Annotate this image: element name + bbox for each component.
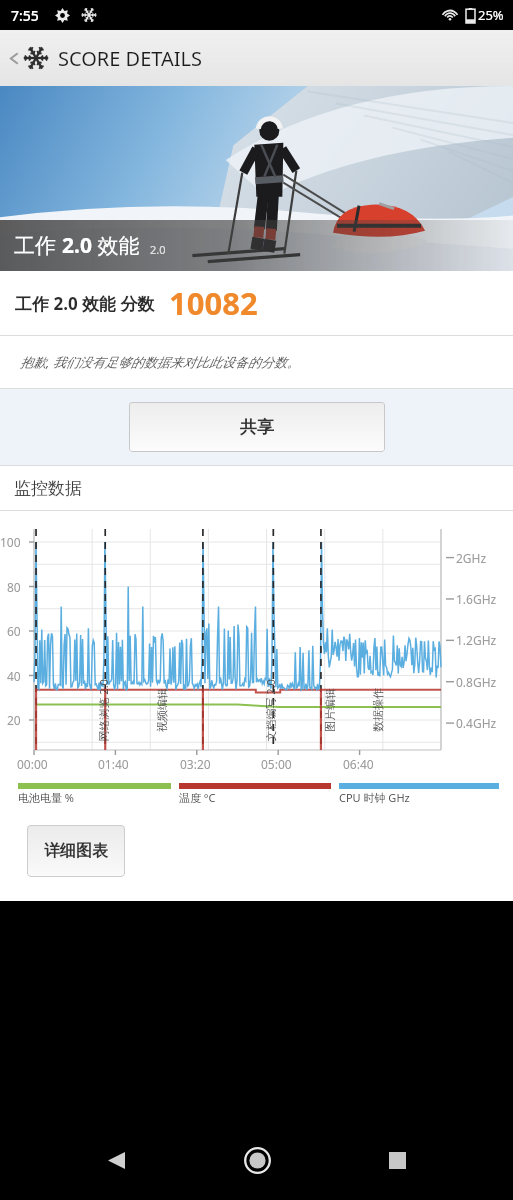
staticText: 00:00 [17,756,48,772]
button[interactable]: Recent apps [373,1136,421,1184]
staticText: 0.8GHz [456,674,497,690]
staticText: 0.4GHz [456,715,497,731]
button[interactable]: Home [233,1136,281,1184]
button[interactable]: Back [0,37,55,79]
staticText: CPU 时钟 GHz [339,790,410,805]
staticText: 80 [7,579,21,595]
staticText: 03:20 [180,756,211,772]
staticText: 电池电量 % [18,790,75,805]
staticText: 温度 °C [179,790,216,805]
staticText: 2.0 [150,242,166,257]
staticText: 1.2GHz [456,632,497,648]
staticText: 效能 [92,231,140,260]
staticText: 1.6GHz [456,591,497,607]
staticText: 2.0 [62,231,92,260]
staticText: 工作 2.0 效能 分数 [15,292,155,315]
staticText: 工作 [14,231,62,260]
staticText: 06:40 [343,756,374,772]
staticText: 共享 [240,417,274,438]
staticText: 网络浏览 2.0 [95,678,109,741]
staticText: 60 [7,623,21,639]
staticText: 40 [7,668,21,684]
staticText: 文档编写 2.0 [262,678,276,741]
staticText: 视频编辑 [155,688,169,732]
staticText: SCORE DETAILS [58,45,203,72]
button[interactable]: 详细图表 [27,825,125,877]
staticText: 20 [7,712,21,728]
staticText: 2GHz [456,550,487,566]
staticText: 01:40 [98,756,129,772]
staticText: 监控数据 [14,478,82,499]
staticText: 抱歉, 我们没有足够的数据来对比此设备的分数。 [20,353,300,371]
staticText: 100 [0,534,21,550]
staticText: 10082 [169,282,258,324]
staticText: 05:00 [261,756,292,772]
staticText: 图片编辑 [323,688,337,732]
button[interactable]: Back [92,1136,140,1184]
button[interactable]: 共享 [129,402,385,452]
staticText: 详细图表 [44,841,108,861]
staticText: 7:55 [11,6,39,25]
staticText: 数据操作 [371,688,385,732]
staticText: 25% [478,6,504,24]
